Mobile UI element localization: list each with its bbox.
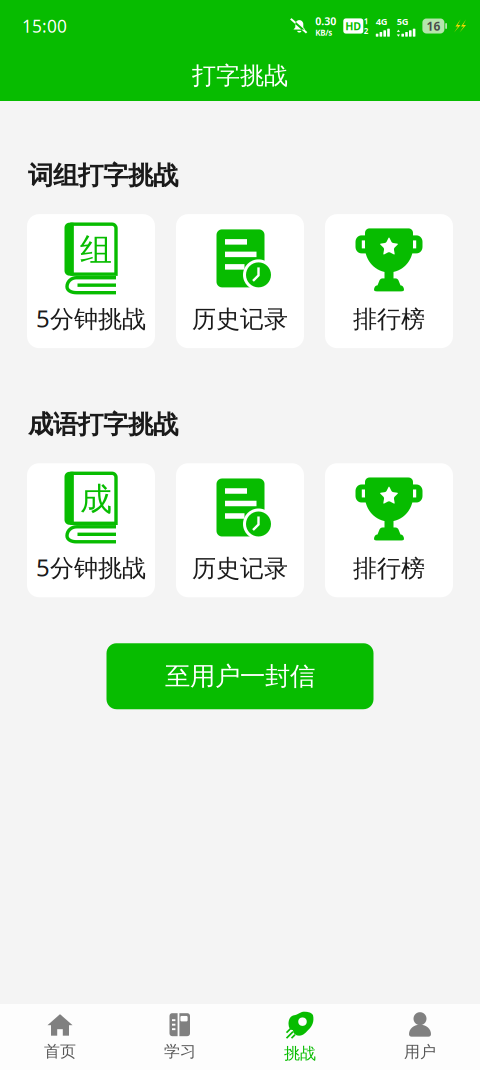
staticText: 5分钟挑战 xyxy=(36,551,146,583)
button[interactable]: 组 xyxy=(27,214,155,348)
staticText: 2 xyxy=(364,25,369,36)
staticText: 首页 xyxy=(44,1042,76,1061)
button[interactable]: 挑战 xyxy=(240,1002,360,1070)
staticText: 成 xyxy=(80,480,112,519)
staticText: 打字挑战 xyxy=(192,61,288,90)
staticText: 词组打字挑战 xyxy=(28,160,178,191)
button[interactable]: 历史记录 xyxy=(176,463,304,597)
staticText: 挑战 xyxy=(284,1044,316,1063)
staticText: 至用户一封信 xyxy=(165,661,315,692)
button[interactable]: 历史记录 xyxy=(176,214,304,348)
staticText: 排行榜 xyxy=(353,305,425,334)
staticText: 4G xyxy=(376,15,388,28)
staticText: 15:00 xyxy=(22,14,67,37)
staticText: 学习 xyxy=(164,1042,196,1061)
staticText: HD xyxy=(345,19,361,33)
staticText: 历史记录 xyxy=(192,554,288,583)
button[interactable]: 学习 xyxy=(120,1004,240,1070)
staticText: 1 xyxy=(364,16,369,26)
staticText: 0.30 xyxy=(315,14,336,28)
button[interactable]: 排行榜 xyxy=(325,463,453,597)
staticText: 5G xyxy=(397,15,409,28)
staticText: 用户 xyxy=(404,1042,436,1062)
button[interactable]: 至用户一封信 xyxy=(106,643,373,709)
staticText: 排行榜 xyxy=(353,554,425,583)
button[interactable]: 首页 xyxy=(0,1004,120,1070)
button[interactable]: 成 xyxy=(27,463,155,597)
staticText: KB/s xyxy=(315,27,332,38)
staticText: 16 xyxy=(426,18,440,34)
button[interactable]: 用户 xyxy=(360,1003,480,1070)
button[interactable]: 排行榜 xyxy=(325,214,453,348)
staticText: 成语打字挑战 xyxy=(28,409,178,440)
staticText: 组 xyxy=(80,230,112,270)
staticText: 历史记录 xyxy=(192,305,288,334)
staticText: 5分钟挑战 xyxy=(36,302,146,334)
